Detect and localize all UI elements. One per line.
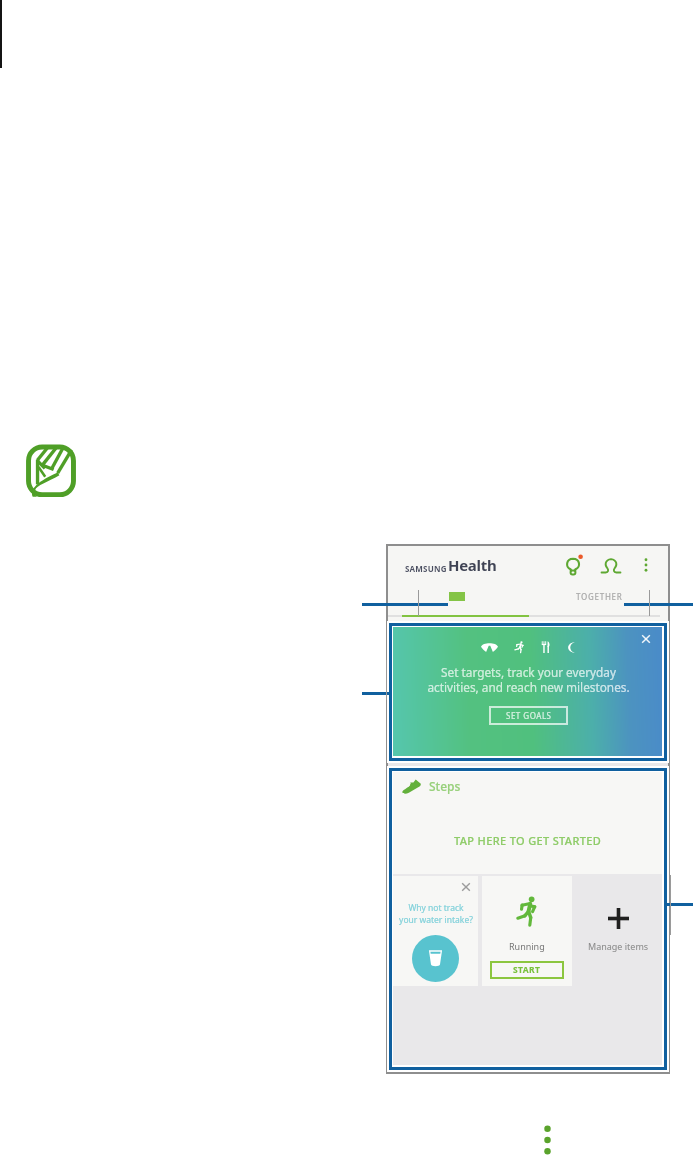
button[interactable]: Profile xyxy=(600,554,622,576)
staticText: SET GOALS xyxy=(506,710,552,721)
staticText: TAP HERE TO GET STARTED xyxy=(454,833,602,848)
staticText: START xyxy=(513,964,541,976)
button[interactable]: More options xyxy=(638,557,654,573)
button[interactable]: Tips xyxy=(563,554,585,576)
button[interactable]: More xyxy=(543,1125,552,1155)
staticText: Steps xyxy=(429,778,461,794)
button[interactable]: Dismiss water tip xyxy=(460,881,472,893)
staticText: Why not track your water intake? xyxy=(399,902,473,926)
button[interactable]: Running xyxy=(482,876,572,986)
button[interactable]: Manage items xyxy=(572,876,663,986)
button[interactable]: SET GOALS xyxy=(489,706,568,725)
button[interactable]: START xyxy=(490,961,564,979)
staticText: Running xyxy=(509,940,545,952)
staticText: Manage items xyxy=(588,940,649,952)
staticText: SAMSUNG xyxy=(405,563,447,574)
staticText: Health xyxy=(448,555,497,575)
button[interactable]: Close banner xyxy=(640,633,652,645)
button[interactable]: Why not track your water intake? xyxy=(393,876,478,986)
staticText: TOGETHER xyxy=(576,591,623,602)
button[interactable]: Steps xyxy=(393,772,663,874)
button[interactable]: Set targets, track your everyday activit… xyxy=(393,627,663,757)
button[interactable] xyxy=(386,579,528,614)
staticText: Set targets, track your everyday activit… xyxy=(427,664,630,695)
button[interactable]: TOGETHER xyxy=(528,579,670,614)
